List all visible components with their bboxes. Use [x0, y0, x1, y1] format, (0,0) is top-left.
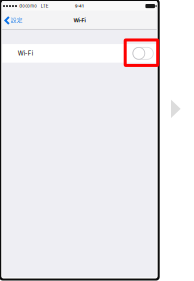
button[interactable]: 設定 — [2, 11, 28, 30]
button[interactable]: Wi-Fi — [2, 44, 157, 63]
staticText: 9:41 — [75, 4, 84, 8]
staticText: LTE — [41, 3, 49, 9]
staticText: Wi-Fi — [18, 50, 33, 57]
staticText: 設定 — [11, 17, 23, 24]
staticText: docomo — [19, 3, 37, 9]
staticText: Wi-Fi — [73, 17, 85, 24]
